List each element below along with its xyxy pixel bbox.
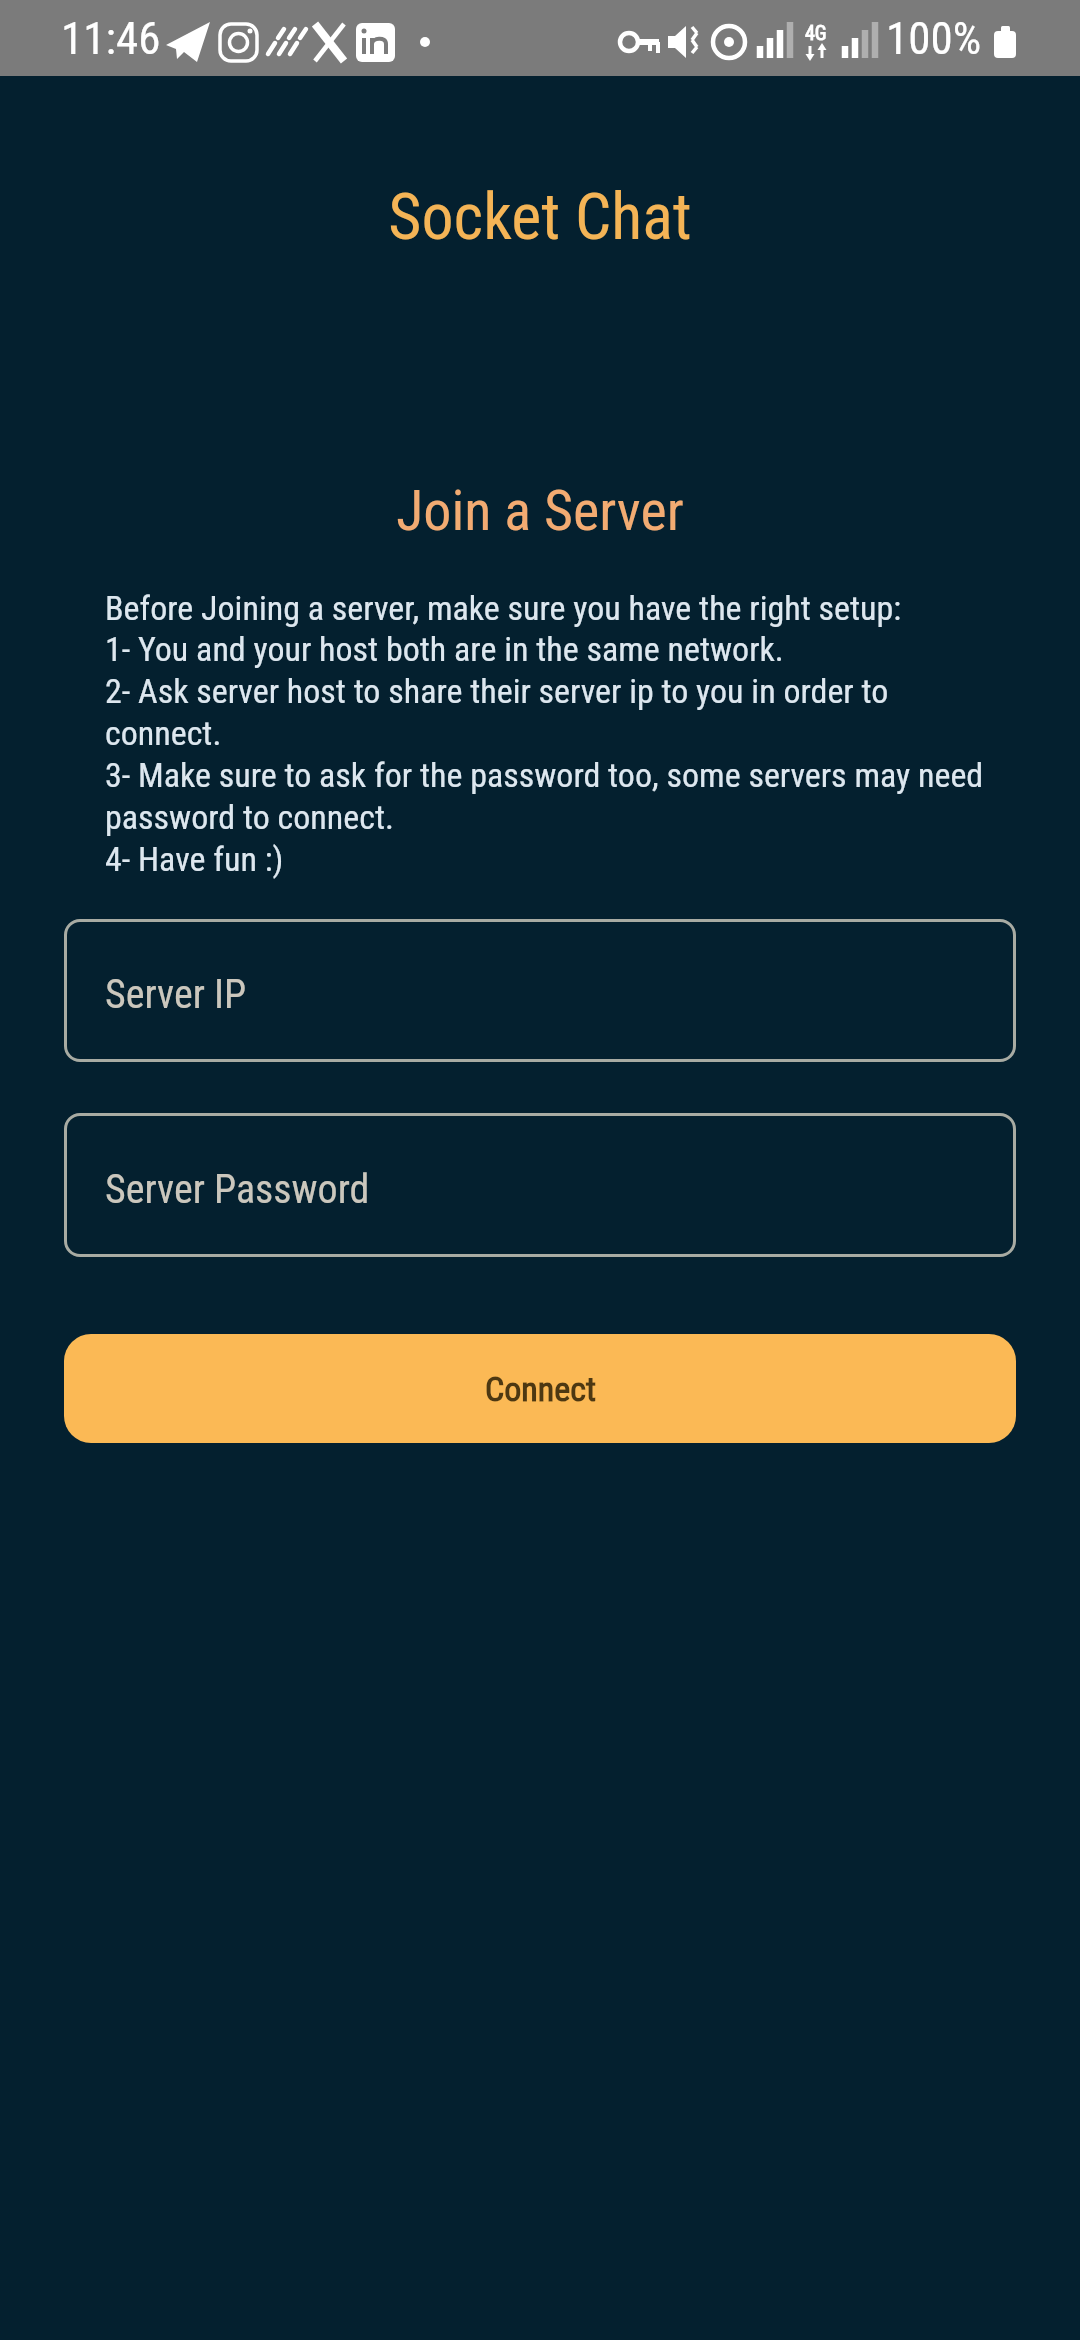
staticText: 11:46 bbox=[61, 12, 161, 65]
staticText: Join a Server bbox=[0, 478, 1080, 544]
staticText: Connect bbox=[485, 1369, 596, 1409]
button[interactable]: Server IP bbox=[64, 919, 1016, 1062]
button[interactable]: Connect bbox=[64, 1334, 1016, 1443]
button[interactable]: Server Password bbox=[64, 1113, 1016, 1257]
staticText: Socket Chat bbox=[0, 180, 1080, 255]
staticText: Server IP bbox=[105, 971, 247, 1018]
staticText: Server Password bbox=[105, 1166, 370, 1213]
staticText: 4G bbox=[805, 21, 827, 44]
staticText: 100% bbox=[886, 12, 982, 65]
staticText: Before Joining a server, make sure you h… bbox=[105, 588, 984, 880]
